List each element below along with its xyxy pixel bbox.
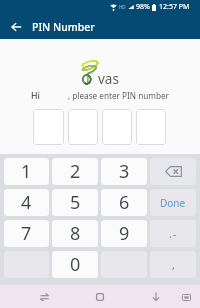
staticText: HD [119,4,126,10]
staticText: 12:57 PM [159,2,190,12]
button[interactable]: 9 [101,220,147,247]
staticText: vas [98,70,119,84]
button[interactable]: PIN digit [136,109,166,145]
button[interactable]: Back [3,14,28,39]
button[interactable]: Switch input method [36,288,53,305]
staticText: 7 [21,221,32,246]
button[interactable]: , [150,251,196,278]
button[interactable]: 0 [52,251,98,278]
button[interactable]: 7 [4,220,49,247]
staticText: , please enter PIN number [68,90,170,101]
staticText: 5 [70,190,81,215]
button[interactable]: 1 [4,158,49,185]
button[interactable]: Keyboard [178,289,194,305]
staticText: 2 [70,159,81,184]
button[interactable]: 2 [52,158,98,185]
button[interactable]: PIN digit [68,109,98,145]
button[interactable]: . [150,220,196,247]
staticText: 4 [21,190,32,215]
button[interactable]: 8 [52,220,98,247]
staticText: 8 [70,221,81,246]
button[interactable]: 5 [52,189,98,216]
button[interactable]: Done [150,189,196,216]
other: Backspace [165,166,182,177]
staticText: 6 [119,190,130,215]
staticText: - [173,227,177,241]
staticText: . [169,227,172,241]
button[interactable]: 3 [101,158,147,185]
button[interactable]: Backspace [150,158,196,185]
staticText: 98% [136,2,150,12]
staticText: 9 [119,221,130,246]
button[interactable]: PIN digit [33,109,64,145]
button[interactable]: PIN digit [102,109,132,145]
staticText: PIN Number [32,20,95,34]
staticText: 0 [70,252,81,277]
staticText: 1 [21,159,32,184]
button[interactable]: 6 [101,189,147,216]
button[interactable]: 4 [4,189,49,216]
button[interactable]: Hide keyboard [147,288,164,305]
staticText: Hi [31,90,40,102]
button[interactable]: Recents [91,288,108,305]
staticText: 3 [119,159,130,184]
staticText: , [172,258,175,272]
staticText: Done [160,196,186,210]
